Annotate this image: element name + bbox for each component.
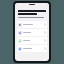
button[interactable]: Get support	[17, 45, 47, 52]
button[interactable]: Check my balance	[17, 37, 47, 44]
button[interactable]: Manage subscriptions	[17, 29, 47, 36]
button[interactable]: Track a package	[17, 21, 47, 28]
